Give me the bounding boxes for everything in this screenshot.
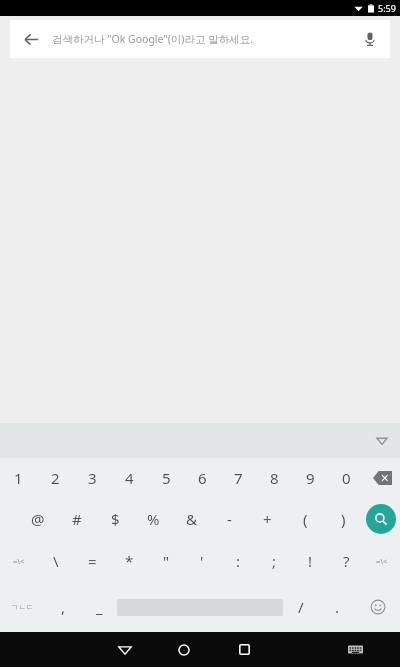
- staticText: &: [186, 509, 197, 529]
- staticText: 2: [51, 468, 60, 488]
- button[interactable]: Backspace: [364, 458, 400, 498]
- button[interactable]: Search: [362, 498, 400, 540]
- button[interactable]: ㄱㄴㄷ: [0, 582, 45, 632]
- staticText: :: [236, 551, 241, 571]
- button[interactable]: 7: [220, 458, 256, 498]
- button[interactable]: 5: [148, 458, 184, 498]
- button[interactable]: ;: [256, 540, 292, 582]
- button[interactable]: @: [18, 498, 57, 540]
- staticText: ?: [343, 551, 350, 571]
- staticText: 5:59: [378, 2, 396, 14]
- button[interactable]: Expand suggestions: [364, 423, 400, 458]
- button[interactable]: /: [283, 582, 319, 632]
- button[interactable]: Voice search: [350, 20, 390, 58]
- staticText: ;: [272, 551, 277, 571]
- staticText: ): [341, 509, 346, 529]
- button[interactable]: .: [319, 582, 355, 632]
- staticText: =\<: [13, 556, 25, 566]
- staticText: 6: [198, 468, 207, 488]
- staticText: 4: [125, 468, 134, 488]
- staticText: ": [163, 551, 170, 571]
- button[interactable]: 8: [256, 458, 292, 498]
- staticText: \: [53, 551, 59, 571]
- button[interactable]: +: [248, 498, 286, 540]
- button[interactable]: #: [57, 498, 96, 540]
- staticText: +: [263, 509, 272, 529]
- button[interactable]: 4: [111, 458, 148, 498]
- button[interactable]: -: [210, 498, 248, 540]
- button[interactable]: (: [286, 498, 324, 540]
- staticText: 7: [234, 468, 243, 488]
- staticText: 3: [88, 468, 97, 488]
- staticText: 5: [162, 468, 171, 488]
- button[interactable]: 3: [74, 458, 111, 498]
- staticText: $: [111, 509, 120, 529]
- staticText: *: [125, 551, 134, 571]
- staticText: 1: [14, 468, 23, 488]
- staticText: _: [96, 597, 103, 617]
- staticText: /: [298, 597, 304, 617]
- staticText: =: [88, 551, 97, 571]
- button[interactable]: 6: [184, 458, 220, 498]
- button[interactable]: _: [81, 582, 117, 632]
- staticText: %: [147, 509, 160, 529]
- button[interactable]: 2: [37, 458, 74, 498]
- button[interactable]: :: [220, 540, 256, 582]
- staticText: (: [303, 509, 308, 529]
- staticText: !: [308, 551, 313, 571]
- button[interactable]: Emoji: [355, 582, 400, 632]
- button[interactable]: $: [96, 498, 134, 540]
- button[interactable]: ": [148, 540, 184, 582]
- staticText: -: [227, 509, 232, 529]
- staticText: ㄱㄴㄷ: [11, 603, 34, 612]
- staticText: 9: [306, 468, 315, 488]
- button[interactable]: 9: [292, 458, 328, 498]
- button[interactable]: *: [111, 540, 148, 582]
- staticText: @: [31, 509, 45, 529]
- button[interactable]: ): [324, 498, 362, 540]
- staticText: =\<: [376, 556, 388, 566]
- button[interactable]: Back: [10, 20, 52, 58]
- staticText: ,: [61, 597, 66, 617]
- staticText: 0: [342, 468, 351, 488]
- button[interactable]: Home: [154, 632, 214, 667]
- button[interactable]: Hide keyboard: [95, 632, 154, 667]
- staticText: ': [200, 551, 204, 571]
- button[interactable]: &: [172, 498, 210, 540]
- button[interactable]: =\<: [364, 540, 400, 582]
- button[interactable]: Space: [117, 582, 283, 632]
- button[interactable]: %: [134, 498, 172, 540]
- button[interactable]: =\<: [0, 540, 37, 582]
- staticText: 8: [270, 468, 279, 488]
- button[interactable]: ,: [45, 582, 81, 632]
- button[interactable]: \: [37, 540, 74, 582]
- button[interactable]: Change keyboard: [325, 632, 385, 667]
- staticText: 검색하거나 "Ok Google"(이)라고 말하세요.: [52, 32, 350, 46]
- button[interactable]: ?: [328, 540, 364, 582]
- button[interactable]: ': [184, 540, 220, 582]
- button[interactable]: Back: [10, 20, 390, 58]
- staticText: .: [335, 597, 340, 617]
- button[interactable]: =: [74, 540, 111, 582]
- button[interactable]: !: [292, 540, 328, 582]
- button[interactable]: 0: [328, 458, 364, 498]
- button[interactable]: 1: [0, 458, 37, 498]
- button[interactable]: Recent apps: [214, 632, 274, 667]
- staticText: #: [72, 509, 82, 529]
